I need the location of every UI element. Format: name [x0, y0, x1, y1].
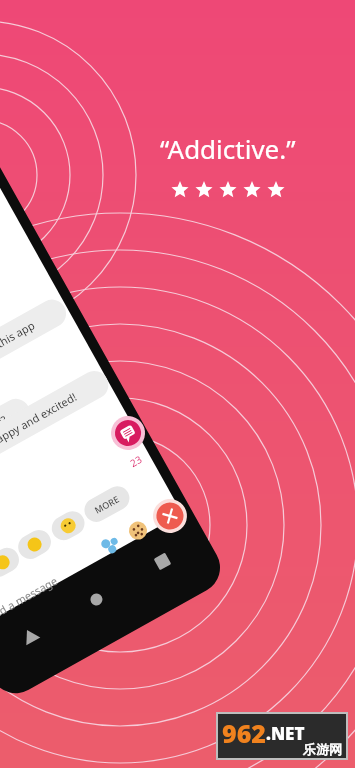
- button[interactable]: [0, 0, 355, 768]
